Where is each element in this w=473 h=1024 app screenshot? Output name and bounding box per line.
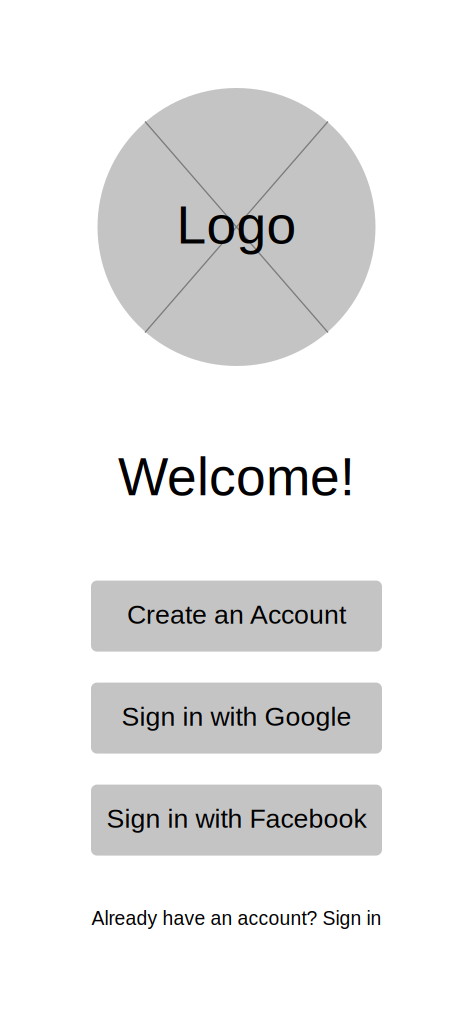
button[interactable]: Sign in with Google: [91, 683, 382, 754]
staticText: Create an Account: [127, 600, 346, 629]
button[interactable]: Create an Account: [91, 581, 382, 652]
staticText: Sign in with Google: [121, 702, 351, 731]
staticText: Sign in with Facebook: [106, 804, 366, 833]
staticText: Already have an account? Sign in: [91, 908, 381, 929]
button[interactable]: Already have an account? Sign in: [91, 908, 381, 929]
button[interactable]: Sign in with Facebook: [91, 785, 382, 856]
staticText: Logo: [176, 195, 296, 255]
staticText: Welcome!: [118, 447, 355, 507]
